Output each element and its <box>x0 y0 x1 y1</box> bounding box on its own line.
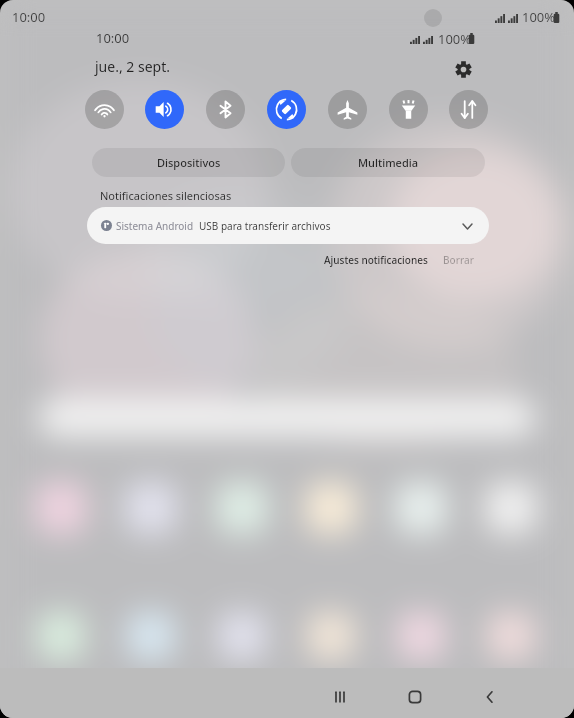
button[interactable]: Sound <box>145 90 184 129</box>
button[interactable]: Dispositivos <box>92 148 285 177</box>
button[interactable]: Wi-Fi <box>85 90 124 129</box>
staticText: 10:00 <box>12 8 46 26</box>
button[interactable]: Auto rotate <box>267 90 306 129</box>
staticText: Multimedia <box>358 155 418 170</box>
staticText: 10:00 <box>96 29 130 47</box>
button[interactable]: Airplane mode <box>328 90 367 129</box>
button[interactable]: Sistema Android <box>87 207 489 244</box>
staticText: 100% <box>438 30 472 48</box>
button[interactable]: Settings <box>445 51 481 87</box>
button[interactable]: Flashlight <box>389 90 428 129</box>
button[interactable]: Back <box>466 675 514 718</box>
button[interactable]: Bluetooth <box>206 90 245 129</box>
staticText: 100% <box>522 8 556 26</box>
staticText: Borrar <box>443 253 474 267</box>
staticText: Dispositivos <box>157 155 221 170</box>
staticText: jue., 2 sept. <box>95 57 170 76</box>
staticText: Sistema Android <box>116 219 194 233</box>
button[interactable]: Mobile data <box>449 90 488 129</box>
button[interactable]: Recents <box>316 675 364 718</box>
button[interactable]: Borrar <box>439 250 478 270</box>
staticText: Ajustes notificaciones <box>324 253 428 267</box>
button[interactable]: Multimedia <box>291 148 485 177</box>
button[interactable]: Ajustes notificaciones <box>320 250 432 270</box>
button[interactable]: Home <box>391 675 439 718</box>
staticText: USB para transferir archivos <box>199 219 331 233</box>
staticText: Notificaciones silenciosas <box>100 188 232 203</box>
